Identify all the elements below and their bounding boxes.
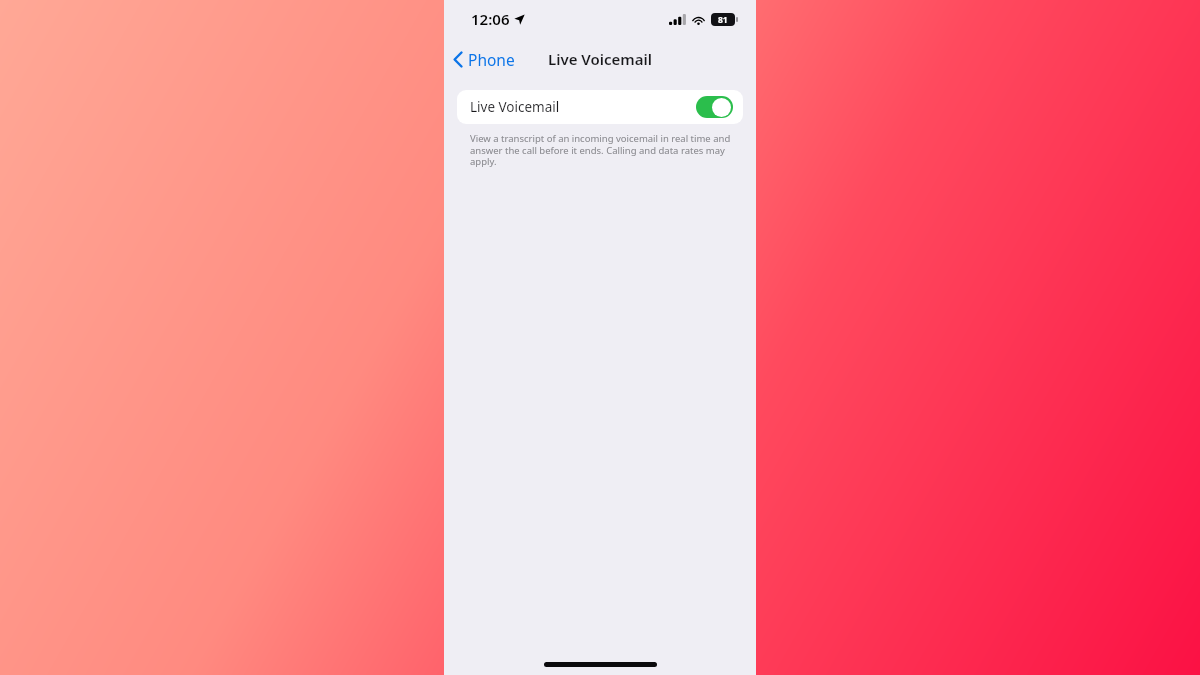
button[interactable]: Phone bbox=[444, 44, 525, 75]
staticText: 81 bbox=[718, 14, 728, 26]
button[interactable]: Live Voicemail, on bbox=[696, 96, 733, 118]
staticText: View a transcript of an incoming voicema… bbox=[470, 132, 734, 168]
staticText: Phone bbox=[468, 49, 515, 70]
staticText: Live Voicemail bbox=[548, 49, 652, 69]
staticText: Live Voicemail bbox=[470, 98, 560, 116]
staticText: 12:06 bbox=[471, 9, 510, 29]
button[interactable]: Live Voicemail bbox=[457, 90, 743, 124]
